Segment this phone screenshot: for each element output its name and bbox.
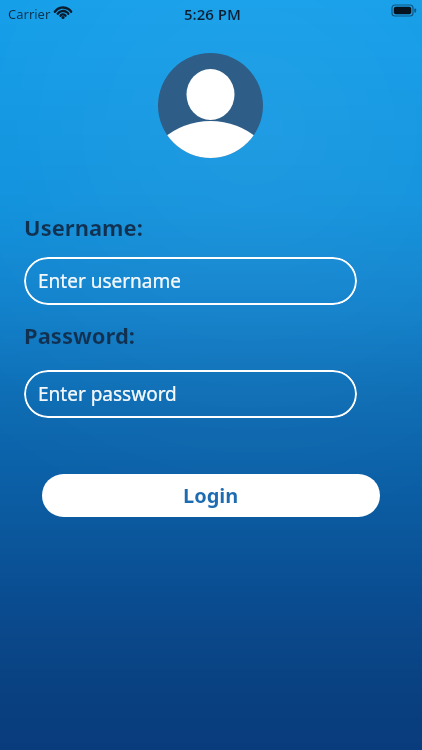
staticText: Password:: [24, 320, 135, 350]
staticText: 5:26 PM: [184, 4, 241, 24]
staticText: Enter username: [38, 268, 181, 294]
staticText: Enter password: [38, 381, 177, 407]
staticText: Login: [183, 482, 239, 509]
button[interactable]: Enter password: [24, 370, 357, 418]
button[interactable]: Enter username: [24, 257, 357, 305]
button[interactable]: Login: [42, 474, 380, 517]
staticText: Username:: [24, 212, 143, 242]
staticText: Carrier: [8, 5, 51, 23]
